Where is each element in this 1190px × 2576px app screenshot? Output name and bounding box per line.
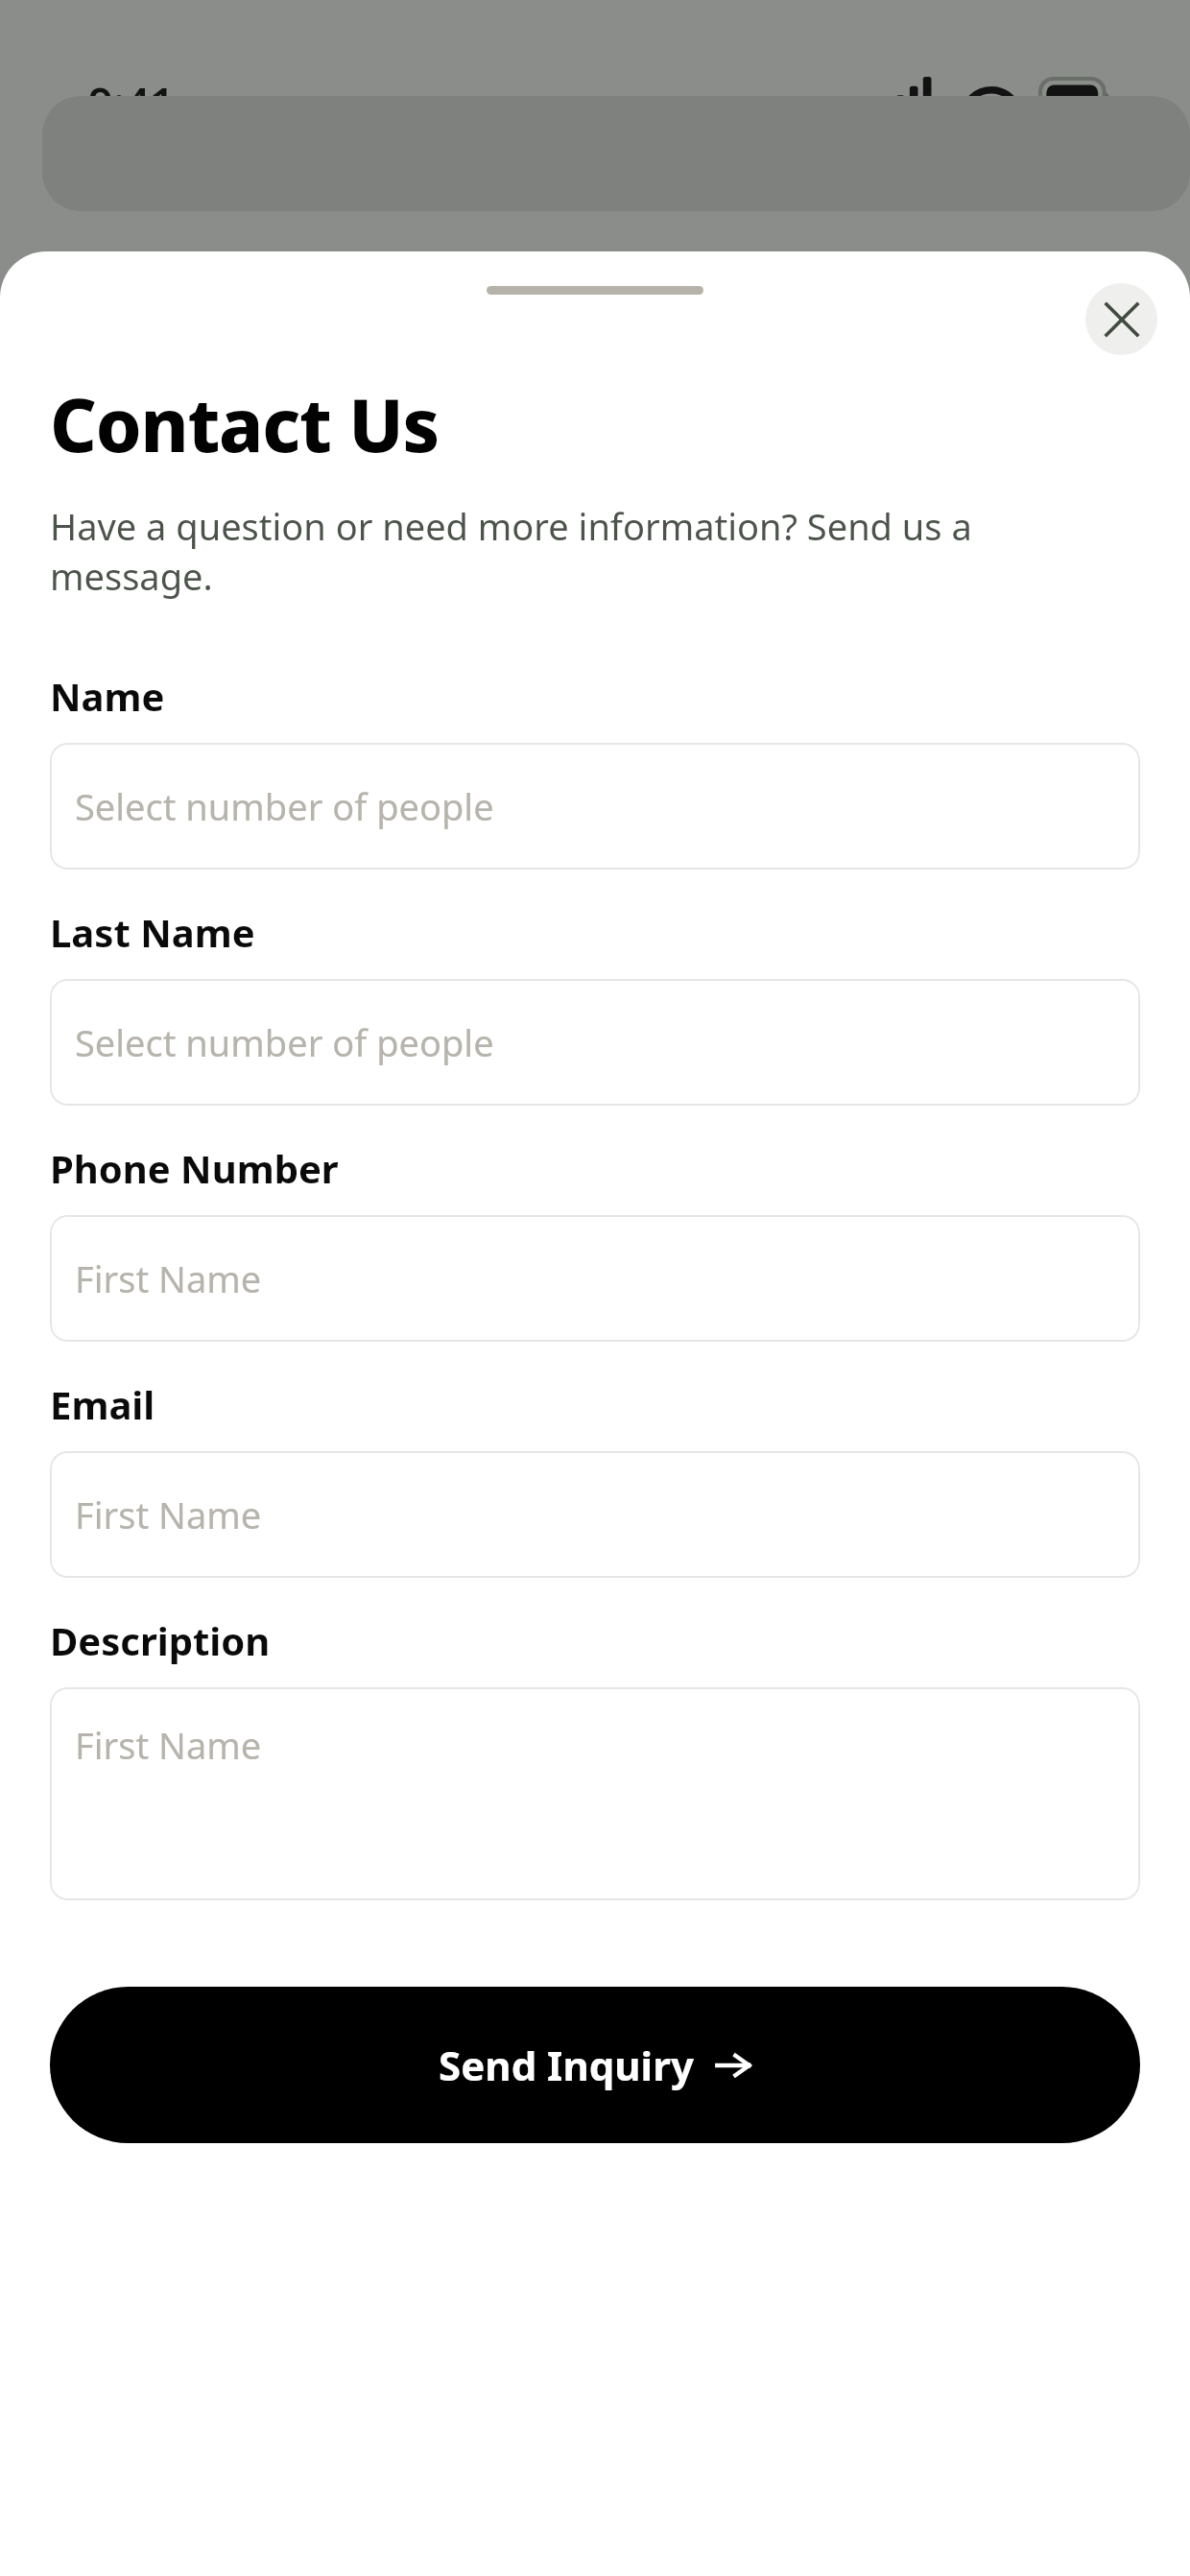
- staticText: 9:41: [88, 73, 175, 131]
- staticText: Last Name: [50, 906, 255, 958]
- button[interactable]: Close: [1085, 283, 1157, 355]
- staticText: Select number of people: [75, 781, 494, 831]
- button[interactable]: First Name: [50, 1451, 1140, 1578]
- staticText: Have a question or need more information…: [50, 501, 1140, 601]
- staticText: First Name: [75, 1720, 262, 1770]
- staticText: Name: [50, 670, 165, 722]
- staticText: First Name: [75, 1490, 262, 1539]
- staticText: Description: [50, 1614, 271, 1666]
- staticText: Phone Number: [50, 1142, 339, 1194]
- staticText: Email: [50, 1378, 155, 1430]
- staticText: Send Inquiry: [439, 2038, 694, 2092]
- button[interactable]: Select number of people: [50, 979, 1140, 1106]
- staticText: Contact Us: [50, 374, 440, 474]
- button[interactable]: Send Inquiry: [50, 1987, 1140, 2143]
- button[interactable]: Select number of people: [50, 743, 1140, 870]
- staticText: First Name: [75, 1253, 262, 1303]
- button[interactable]: First Name: [50, 1215, 1140, 1342]
- staticText: Select number of people: [75, 1017, 494, 1067]
- button[interactable]: First Name: [50, 1687, 1140, 1900]
